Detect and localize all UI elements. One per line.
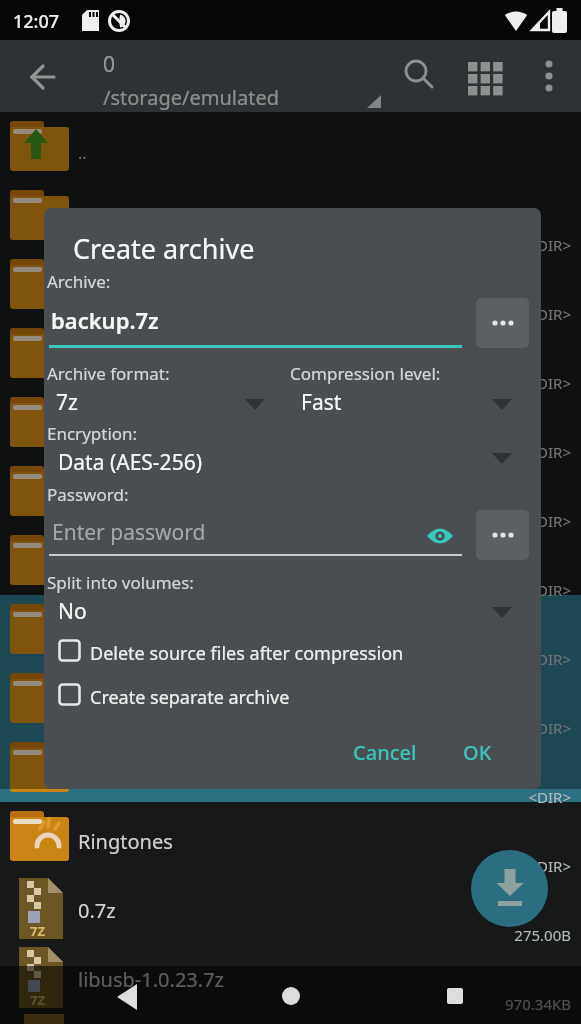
button[interactable]: Data (AES-256) — [50, 445, 510, 475]
staticText: Data (AES-256) — [58, 448, 202, 477]
button[interactable] — [492, 399, 512, 411]
staticText: 0.7z — [78, 897, 116, 924]
button[interactable] — [0, 871, 581, 940]
button[interactable] — [58, 683, 81, 706]
staticText: Split into volumes: — [47, 571, 194, 594]
button[interactable] — [400, 55, 436, 91]
button[interactable]: OK — [442, 730, 512, 775]
staticText: 0 — [103, 50, 116, 79]
button[interactable] — [100, 975, 150, 1019]
staticText: Enter password — [52, 518, 206, 547]
button[interactable] — [0, 595, 581, 664]
button[interactable]: 7z — [50, 385, 270, 415]
button[interactable] — [245, 399, 265, 411]
button[interactable] — [0, 112, 581, 181]
staticText: Create archive — [73, 230, 255, 267]
button[interactable] — [0, 802, 581, 871]
staticText: <DIR> — [401, 511, 571, 531]
button[interactable] — [0, 733, 581, 802]
button[interactable] — [24, 60, 60, 94]
button[interactable] — [0, 319, 581, 388]
staticText: 12:07 — [13, 9, 60, 34]
staticText: <DIR> — [401, 373, 571, 393]
button[interactable] — [0, 940, 581, 1009]
button[interactable]: Cancel — [340, 730, 430, 775]
staticText: /storage/emulated — [103, 84, 279, 111]
staticText: <DIR> — [401, 580, 571, 600]
staticText: <DIR> — [401, 856, 571, 876]
button[interactable]: No — [50, 593, 510, 625]
button[interactable] — [0, 526, 581, 595]
staticText: <DIR> — [401, 787, 571, 807]
staticText: libusb-1.0.23.7z — [78, 966, 224, 993]
staticText: Encryption: — [47, 422, 138, 445]
button[interactable] — [532, 54, 566, 98]
button[interactable] — [0, 664, 581, 733]
button[interactable] — [430, 975, 480, 1019]
staticText: Delete source files after compression — [90, 641, 404, 666]
button[interactable] — [0, 181, 581, 250]
button[interactable] — [471, 850, 548, 927]
staticText: 970.34KB — [401, 994, 571, 1014]
button[interactable] — [266, 975, 316, 1019]
button[interactable] — [492, 607, 512, 619]
button[interactable] — [58, 639, 81, 662]
staticText: 7z — [56, 388, 78, 417]
staticText: 7Z — [30, 991, 45, 1009]
staticText: Create separate archive — [90, 685, 290, 710]
staticText: <DIR> — [401, 649, 571, 669]
button[interactable]: Enter password — [49, 512, 462, 557]
staticText: <DIR> — [401, 304, 571, 324]
button[interactable] — [0, 388, 581, 457]
staticText: backup.7z — [51, 305, 159, 335]
staticText: Archive: — [47, 270, 111, 293]
staticText: Password: — [47, 483, 129, 506]
button[interactable] — [476, 510, 529, 560]
staticText: <DIR> — [401, 442, 571, 462]
staticText: No — [58, 597, 87, 626]
staticText: Fast — [301, 388, 342, 417]
button[interactable]: Fast — [295, 385, 525, 415]
staticText: Compression level: — [290, 362, 441, 385]
staticText: 7Z — [30, 922, 45, 940]
staticText: Archive format: — [47, 362, 170, 385]
button[interactable] — [492, 453, 512, 465]
staticText: OK — [463, 739, 492, 766]
staticText: .. — [78, 142, 87, 164]
staticText: Ringtones — [78, 828, 173, 855]
button[interactable] — [476, 298, 529, 348]
staticText: Cancel — [353, 739, 417, 766]
staticText: 275.00B — [401, 925, 571, 945]
staticText: <DIR> — [401, 235, 571, 255]
button[interactable]: /storage/emulated — [100, 84, 390, 112]
staticText: <DIR> — [401, 718, 571, 738]
button[interactable] — [462, 56, 506, 100]
button[interactable] — [0, 250, 581, 319]
button[interactable] — [0, 457, 581, 526]
button[interactable]: backup.7z — [49, 300, 462, 348]
button[interactable] — [426, 524, 454, 548]
